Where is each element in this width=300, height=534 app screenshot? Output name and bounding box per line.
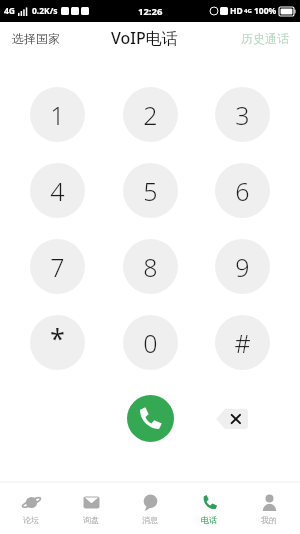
button[interactable]: 1: [30, 87, 85, 142]
staticText: 选择国家: [12, 31, 60, 46]
staticText: 3: [235, 98, 250, 132]
button[interactable]: 询盘: [63, 482, 119, 534]
button[interactable]: 9: [215, 239, 270, 294]
staticText: 8: [143, 250, 158, 284]
staticText: 消息: [142, 515, 158, 525]
button[interactable]: 0: [123, 315, 178, 370]
staticText: 电话: [201, 515, 217, 525]
staticText: 0.2K/s: [32, 5, 58, 17]
button[interactable]: Call: [127, 395, 174, 442]
button[interactable]: 论坛: [3, 482, 59, 534]
button[interactable]: 2: [123, 87, 178, 142]
staticText: 100%: [254, 5, 277, 17]
staticText: HD: [230, 5, 243, 17]
button[interactable]: 4: [30, 163, 85, 218]
button[interactable]: 6: [215, 163, 270, 218]
staticText: 5: [143, 174, 158, 208]
staticText: 我的: [261, 515, 277, 525]
staticText: #: [234, 326, 251, 360]
staticText: 论坛: [23, 515, 39, 525]
button[interactable]: 3: [215, 87, 270, 142]
button[interactable]: *: [30, 315, 85, 370]
button[interactable]: #: [215, 315, 270, 370]
button[interactable]: 选择国家: [0, 27, 68, 50]
staticText: 6: [235, 174, 250, 208]
staticText: 1: [50, 98, 65, 132]
staticText: 2: [143, 98, 158, 132]
staticText: 7: [50, 250, 65, 284]
button[interactable]: 8: [123, 239, 178, 294]
button[interactable]: 我的: [241, 482, 297, 534]
staticText: 4: [50, 174, 65, 208]
staticText: 4G: [244, 7, 252, 15]
staticText: 12:26: [138, 5, 163, 18]
staticText: 4G: [4, 5, 16, 17]
button[interactable]: 电话: [181, 482, 237, 534]
staticText: 9: [235, 250, 250, 284]
button[interactable]: 7: [30, 239, 85, 294]
button[interactable]: 历史通话: [233, 27, 300, 50]
staticText: 历史通话: [241, 31, 289, 46]
button[interactable]: 5: [123, 163, 178, 218]
button[interactable]: 消息: [122, 482, 178, 534]
staticText: 询盘: [83, 515, 99, 525]
button[interactable]: Backspace: [214, 407, 250, 431]
staticText: VoIP电话: [111, 27, 178, 49]
staticText: 0: [143, 326, 158, 360]
staticText: *: [50, 320, 65, 357]
